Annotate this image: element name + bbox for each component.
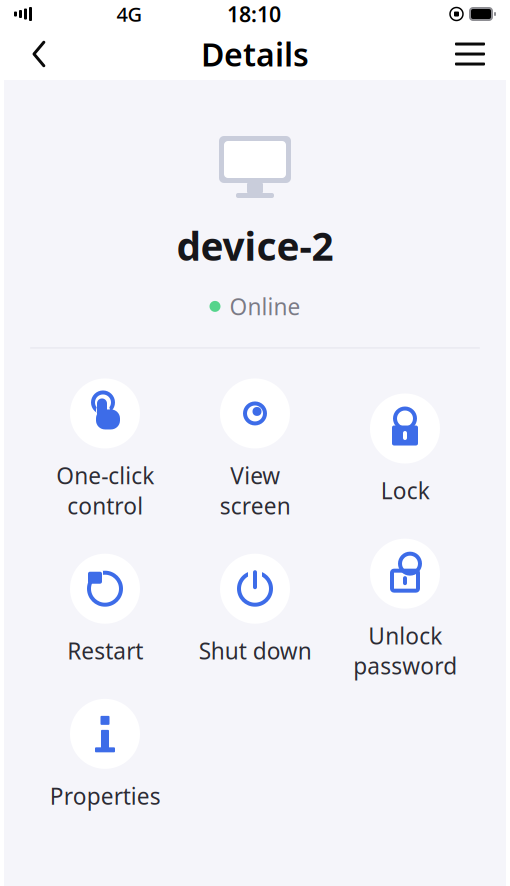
staticText: Properties — [49, 781, 160, 811]
staticText: Lock — [380, 475, 429, 506]
button[interactable]: Properties — [30, 695, 180, 811]
staticText: Online — [229, 291, 300, 321]
button[interactable]: Lock — [330, 389, 480, 506]
staticText: View screen — [219, 460, 290, 521]
button[interactable]: Restart — [30, 550, 180, 666]
staticText: Shut down — [198, 636, 311, 666]
button[interactable]: View screen — [180, 374, 330, 521]
staticText: 4G — [116, 1, 142, 27]
button[interactable]: Unlock password — [330, 535, 480, 681]
staticText: 18:10 — [227, 0, 281, 28]
button[interactable]: Menu — [442, 31, 498, 77]
staticText: Unlock password — [353, 621, 457, 681]
staticText: Details — [201, 33, 309, 75]
staticText: Restart — [67, 636, 143, 666]
button[interactable]: One-click control — [30, 374, 180, 521]
staticText: One-click control — [56, 460, 154, 521]
button[interactable]: Shut down — [180, 550, 330, 666]
staticText: device-2 — [176, 220, 333, 271]
button[interactable]: Back — [12, 31, 66, 77]
